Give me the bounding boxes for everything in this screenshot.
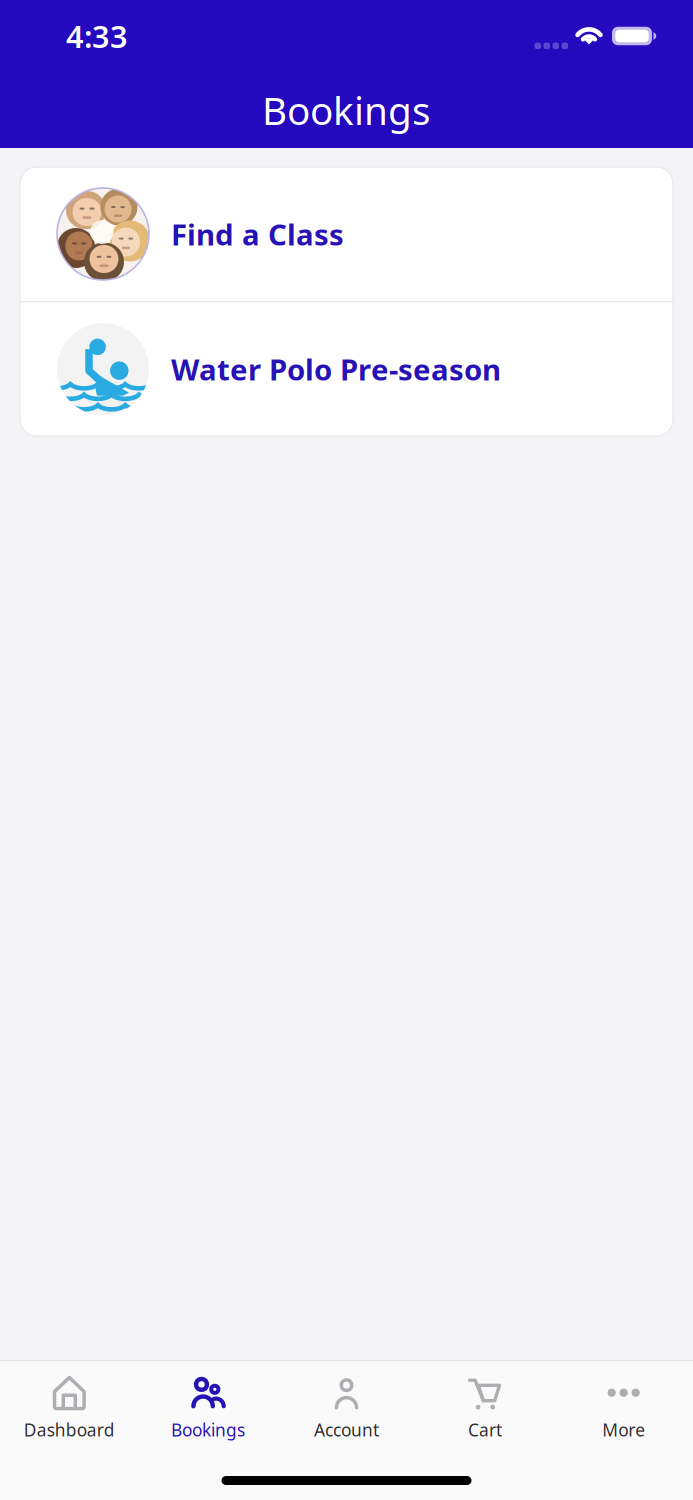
staticText: Find a Class	[171, 214, 344, 253]
button[interactable]: Account	[277, 1370, 416, 1441]
staticText: Cart	[468, 1418, 502, 1441]
staticText: More	[602, 1418, 645, 1441]
staticText: Dashboard	[24, 1418, 115, 1441]
button[interactable]: Water Polo Pre-season	[20, 302, 673, 436]
button[interactable]: Find a Class	[20, 167, 673, 301]
staticText: 4:33	[66, 16, 128, 56]
staticText: Bookings	[171, 1418, 245, 1441]
button[interactable]: More	[554, 1370, 693, 1441]
staticText: Account	[314, 1418, 379, 1441]
button[interactable]: Bookings	[139, 1370, 277, 1441]
button[interactable]: Dashboard	[0, 1370, 139, 1441]
staticText: Bookings	[262, 84, 431, 136]
staticText: Water Polo Pre-season	[171, 350, 501, 389]
button[interactable]: Cart	[416, 1370, 554, 1441]
